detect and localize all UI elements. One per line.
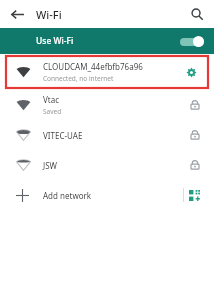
staticText: Add network [43, 190, 92, 201]
staticText: Connected, no internet [43, 74, 114, 83]
staticText: Vtac [43, 94, 60, 105]
staticText: Use Wi-Fi [36, 35, 74, 47]
button[interactable]: Back [6, 3, 28, 25]
button[interactable]: CLOUDCAM_44efbfb76a96 [4, 55, 210, 89]
button[interactable]: VITEC-UAE [0, 120, 214, 150]
button[interactable]: Search [186, 3, 208, 25]
staticText: VITEC-UAE [43, 130, 83, 141]
staticText: Saved [43, 107, 62, 116]
button[interactable]: JSW [0, 150, 214, 180]
staticText: Wi-Fi [36, 7, 62, 22]
button[interactable]: Use Wi-Fi [0, 28, 214, 54]
staticText: JSW [43, 160, 58, 171]
button[interactable]: Scan QR code [184, 185, 204, 205]
staticText: CLOUDCAM_44efbfb76a96 [43, 61, 143, 72]
button[interactable]: Add network [0, 180, 214, 210]
button[interactable]: Network settings [182, 63, 200, 81]
button[interactable]: Vtac [0, 90, 214, 120]
